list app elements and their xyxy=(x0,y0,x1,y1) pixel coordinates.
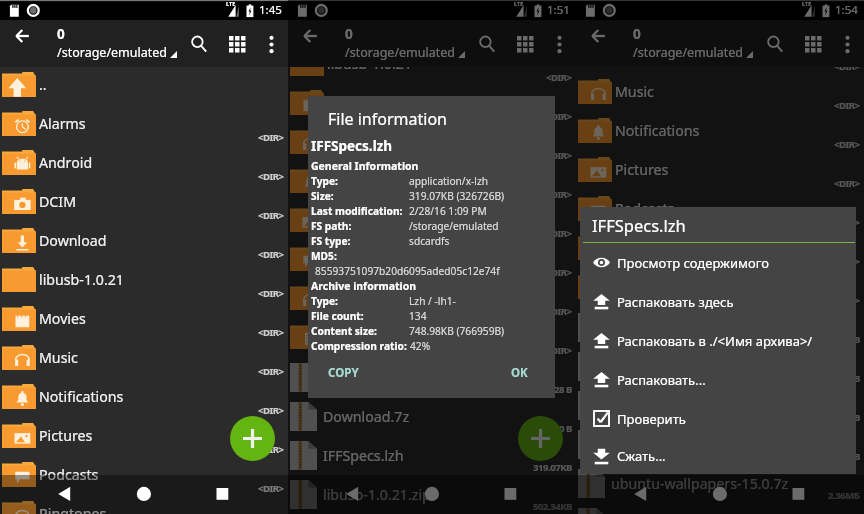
button[interactable]: wallpapers.zip xyxy=(576,503,864,514)
button[interactable]: Add xyxy=(230,416,275,461)
button[interactable]: Android xyxy=(0,145,288,184)
button[interactable]: libusb-1.0.21 xyxy=(0,262,288,301)
button[interactable]: Podcasts xyxy=(288,241,576,280)
button[interactable]: More options xyxy=(834,31,860,57)
button[interactable]: .. xyxy=(0,67,288,106)
staticText: 319.07KB xyxy=(533,461,572,474)
staticText: Alarms xyxy=(39,114,86,133)
staticText: LTE xyxy=(514,0,524,7)
staticText: <DIR> xyxy=(546,188,572,201)
button[interactable]: Просмотр содержимого xyxy=(580,243,856,282)
staticText: /storage/emulated xyxy=(409,219,499,233)
staticText: <DIR> xyxy=(546,71,572,84)
staticText: Распаковать здесь xyxy=(617,293,734,311)
button[interactable]: Ringtones xyxy=(288,280,576,319)
staticText: application/x-lzh xyxy=(409,174,489,188)
staticText: 0 xyxy=(57,25,65,43)
staticText: /storage/emulated xyxy=(57,44,167,61)
staticText: <DIR> xyxy=(546,305,572,318)
staticText: Compression ratio: xyxy=(311,339,407,353)
staticText: IFFSpecs.lzh xyxy=(311,137,393,155)
button[interactable]: Download.7z xyxy=(288,397,576,436)
staticText: Size: xyxy=(311,189,334,203)
button[interactable]: Change view xyxy=(799,30,827,58)
button[interactable]: Распаковать здесь xyxy=(580,282,856,321)
button[interactable]: Change view xyxy=(511,30,539,58)
staticText: sdcardfs xyxy=(409,234,450,248)
button[interactable]: Pictures xyxy=(0,418,288,457)
staticText: Type: xyxy=(311,174,338,188)
button[interactable]: Search xyxy=(473,30,501,58)
button[interactable]: libusb-1.0.21 xyxy=(288,46,576,85)
button[interactable]: Music xyxy=(0,340,288,379)
button[interactable]: Alarms.zip xyxy=(576,308,864,347)
staticText: Movies xyxy=(615,43,662,62)
button[interactable]: Podcasts xyxy=(0,457,288,496)
staticText: libusb-1.0.21 xyxy=(327,54,412,73)
button[interactable]: Add xyxy=(518,416,563,461)
staticText: libusb-1.0.21 xyxy=(39,270,124,289)
button[interactable]: Navigate up xyxy=(8,22,36,50)
button[interactable]: Download xyxy=(0,223,288,262)
button[interactable]: Alarms xyxy=(0,106,288,145)
staticText: <DIR> xyxy=(258,170,284,183)
staticText: <DIR> xyxy=(258,131,284,144)
staticText: <DIR> xyxy=(258,482,284,495)
staticText: Podcasts xyxy=(39,465,99,484)
button[interactable]: Ringtones xyxy=(576,230,864,269)
button[interactable]: libusb-1.0.21.zip xyxy=(288,475,576,514)
staticText: Samsung xyxy=(327,327,390,346)
button[interactable]: Notifications xyxy=(0,379,288,418)
button[interactable]: Samsung xyxy=(288,319,576,358)
button[interactable]: Change view xyxy=(223,30,251,58)
staticText: Music xyxy=(39,348,78,367)
button[interactable]: Movies xyxy=(576,35,864,74)
button[interactable]: OK xyxy=(507,363,532,383)
staticText: Распаковать в ./<Имя архива>/ xyxy=(617,332,813,350)
button[interactable]: Alarms.zip xyxy=(288,358,576,397)
button[interactable]: Распаковать в ./<Имя архива>/ xyxy=(580,321,856,360)
button[interactable]: Ringtones xyxy=(0,496,288,514)
button[interactable]: libusb-1.0.21.zip xyxy=(576,425,864,464)
button[interactable]: More options xyxy=(546,31,572,57)
button[interactable]: Podcasts xyxy=(576,191,864,230)
button[interactable]: Сжать... xyxy=(580,438,856,474)
button[interactable]: ubuntu-wallpapers-15.0.7z xyxy=(576,464,864,503)
staticText: 748.98KB (766959B) xyxy=(409,324,505,338)
button[interactable]: Navigate up xyxy=(296,22,324,50)
button[interactable]: IFFSpecs.lzh xyxy=(288,436,576,475)
staticText: Просмотр содержимого xyxy=(617,254,769,272)
button[interactable]: Notifications xyxy=(288,163,576,202)
staticText: 1:45 xyxy=(259,2,282,18)
staticText: 2.36МБ xyxy=(828,489,860,502)
button[interactable]: Samsung xyxy=(576,269,864,308)
button[interactable]: COPY xyxy=(324,363,363,383)
button[interactable]: Распаковать... xyxy=(580,360,856,399)
button[interactable]: Search xyxy=(185,30,213,58)
staticText: Podcasts xyxy=(615,199,675,218)
button[interactable]: Download.7z xyxy=(576,347,864,386)
button[interactable]: Movies xyxy=(0,301,288,340)
button[interactable]: Movies xyxy=(288,85,576,124)
button[interactable]: Проверить xyxy=(580,399,856,438)
staticText: <DIR> xyxy=(258,287,284,300)
staticText: 42% xyxy=(410,339,431,353)
staticText: 0 xyxy=(345,25,353,43)
button[interactable]: More options xyxy=(258,31,284,57)
staticText: 128 B xyxy=(837,333,860,346)
button[interactable]: Music xyxy=(576,74,864,113)
staticText: Alarms.zip xyxy=(323,368,393,387)
staticText: Lzh / -lh1- xyxy=(409,294,456,308)
button[interactable]: Navigate up xyxy=(584,22,612,50)
button[interactable]: DCIM xyxy=(0,184,288,223)
button[interactable]: Notifications xyxy=(576,113,864,152)
button[interactable]: Pictures xyxy=(288,202,576,241)
button[interactable]: Pictures xyxy=(576,152,864,191)
button[interactable]: Search xyxy=(761,30,789,58)
staticText: Type: xyxy=(311,294,338,308)
button[interactable]: IFFSpecs.lzh xyxy=(576,386,864,425)
button[interactable]: Music xyxy=(288,124,576,163)
staticText: 0 B xyxy=(847,372,860,385)
